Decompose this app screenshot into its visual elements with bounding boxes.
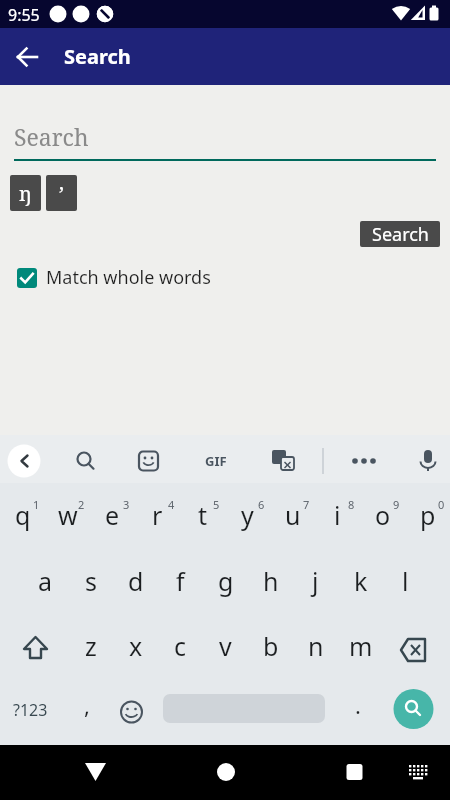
staticText: m xyxy=(349,629,373,663)
staticText: ŋ xyxy=(19,180,32,207)
staticText: 5 xyxy=(213,497,220,512)
staticText: ?123 xyxy=(13,699,48,721)
button[interactable] xyxy=(110,687,154,731)
staticText: ʼ xyxy=(59,180,64,207)
staticText: d xyxy=(128,564,144,598)
staticText: GIF xyxy=(205,452,227,470)
staticText: c xyxy=(174,629,187,663)
button[interactable]: f xyxy=(158,557,203,605)
button[interactable]: k xyxy=(338,557,383,605)
staticText: q xyxy=(15,498,31,532)
button[interactable] xyxy=(0,435,225,483)
button[interactable]: ʼ xyxy=(46,175,77,211)
staticText: u xyxy=(285,498,301,532)
button[interactable]: c xyxy=(158,622,203,670)
button[interactable]: n xyxy=(293,622,338,670)
staticText: k xyxy=(354,564,368,598)
button[interactable]: i xyxy=(315,491,360,539)
button[interactable]: t xyxy=(180,491,225,539)
button[interactable] xyxy=(225,435,450,483)
button[interactable]: m xyxy=(338,622,383,670)
staticText: 0 xyxy=(438,497,445,512)
button[interactable]: h xyxy=(248,557,293,605)
staticText: o xyxy=(375,498,391,532)
button[interactable] xyxy=(0,29,56,85)
button[interactable]: q xyxy=(0,491,45,539)
button[interactable]: r xyxy=(135,491,180,539)
button[interactable]: d xyxy=(113,557,158,605)
button[interactable]: l xyxy=(383,557,428,605)
staticText: 1 xyxy=(33,497,40,512)
button[interactable] xyxy=(10,622,60,670)
staticText: Search xyxy=(372,222,429,247)
staticText: x xyxy=(129,629,143,663)
button[interactable]: a xyxy=(23,557,68,605)
button[interactable]: w xyxy=(45,491,90,539)
staticText: z xyxy=(85,629,97,663)
staticText: j xyxy=(312,564,319,598)
staticText: Search xyxy=(64,43,131,70)
staticText: l xyxy=(402,564,409,598)
button[interactable]: y xyxy=(225,491,270,539)
staticText: . xyxy=(355,690,361,720)
button[interactable] xyxy=(66,687,110,731)
staticText: i xyxy=(334,498,341,532)
staticText: n xyxy=(308,629,324,663)
staticText: Match whole words xyxy=(46,265,211,290)
staticText: s xyxy=(85,564,97,598)
button[interactable]: o xyxy=(360,491,405,539)
staticText: 9 xyxy=(393,497,400,512)
staticText: 3 xyxy=(123,497,130,512)
staticText: 7 xyxy=(303,497,310,512)
button[interactable]: e xyxy=(90,491,135,539)
staticText: e xyxy=(105,498,120,532)
button[interactable] xyxy=(300,745,450,800)
staticText: h xyxy=(263,564,279,598)
button[interactable]: s xyxy=(68,557,113,605)
button[interactable] xyxy=(8,687,60,731)
button[interactable]: Search xyxy=(360,221,440,247)
staticText: p xyxy=(420,498,436,532)
button[interactable]: u xyxy=(270,491,315,539)
button[interactable]: x xyxy=(113,622,158,670)
staticText: y xyxy=(241,498,254,532)
button[interactable] xyxy=(336,687,380,731)
button[interactable]: z xyxy=(68,622,113,670)
button[interactable]: g xyxy=(203,557,248,605)
button[interactable] xyxy=(390,622,440,670)
button[interactable]: p xyxy=(405,491,450,539)
staticText: g xyxy=(218,564,234,598)
staticText: w xyxy=(58,498,78,532)
button[interactable]: b xyxy=(248,622,293,670)
staticText: r xyxy=(152,498,163,532)
button[interactable]: Match whole words xyxy=(17,265,211,290)
staticText: a xyxy=(38,564,53,598)
button[interactable]: j xyxy=(293,557,338,605)
staticText: , xyxy=(84,690,90,720)
staticText: 2 xyxy=(78,497,85,512)
button[interactable] xyxy=(0,745,150,800)
staticText: 8 xyxy=(348,497,355,512)
staticText: Search xyxy=(14,121,89,152)
staticText: 9:55 xyxy=(8,4,40,26)
staticText: v xyxy=(219,629,232,663)
staticText: 6 xyxy=(258,497,265,512)
staticText: b xyxy=(263,629,279,663)
staticText: t xyxy=(198,498,208,532)
button[interactable]: ŋ xyxy=(10,175,41,211)
button[interactable] xyxy=(393,689,433,729)
button[interactable]: v xyxy=(203,622,248,670)
staticText: f xyxy=(176,564,185,598)
button[interactable] xyxy=(150,745,300,800)
staticText: 4 xyxy=(168,497,175,512)
